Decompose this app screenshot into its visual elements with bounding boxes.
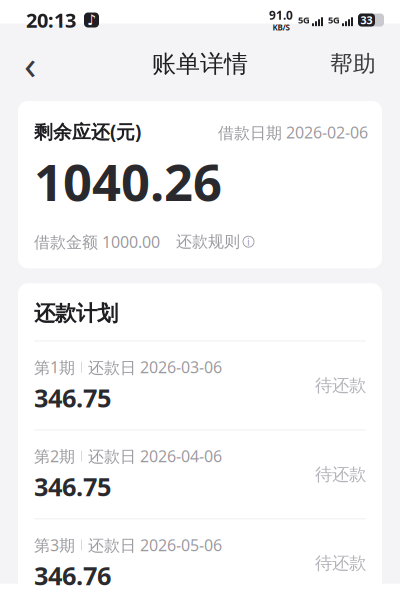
staticText: 5G <box>298 14 310 26</box>
staticText: i <box>247 235 250 249</box>
staticText: 1040.26 <box>34 148 222 215</box>
staticText: 第2期 <box>34 445 75 467</box>
staticText: 帮助 <box>330 50 376 78</box>
staticText: 346.75 <box>34 470 111 503</box>
staticText: ‹ <box>24 37 36 90</box>
button[interactable]: 第3期 <box>18 519 382 607</box>
staticText: 还款日 2026-03-06 <box>88 356 222 378</box>
button[interactable]: 第1期 <box>18 341 382 429</box>
staticText: 待还款 <box>315 464 366 485</box>
staticText: 还款日 2026-05-06 <box>88 534 222 555</box>
staticText: 5G <box>328 14 340 26</box>
staticText: 346.76 <box>34 559 111 592</box>
staticText: 91.0 <box>269 7 293 23</box>
staticText: 33 <box>360 13 372 27</box>
staticText: 第1期 <box>34 356 75 378</box>
button[interactable]: 第2期 <box>18 430 382 518</box>
staticText: 还款计划 <box>34 300 118 326</box>
staticText: 剩余应还(元) <box>34 119 141 144</box>
staticText: 还款日 2026-04-06 <box>88 445 222 467</box>
staticText: 346.75 <box>34 381 111 414</box>
staticText: 待还款 <box>315 375 366 396</box>
staticText: 20:13 <box>26 7 76 33</box>
button[interactable]: 返回 <box>8 42 52 86</box>
staticText: 借款金额 1000.00 <box>34 231 160 252</box>
button[interactable]: 帮助 <box>320 42 386 86</box>
staticText: 账单详情 <box>152 49 248 79</box>
staticText: KB/S <box>272 22 289 33</box>
staticText: 还款规则 <box>176 232 240 252</box>
staticText: 借款日期 2026-02-06 <box>218 122 368 143</box>
staticText: ♪ <box>87 12 96 28</box>
staticText: 待还款 <box>315 553 366 574</box>
staticText: 第3期 <box>34 534 75 555</box>
button[interactable]: 还款规则 <box>166 232 254 252</box>
